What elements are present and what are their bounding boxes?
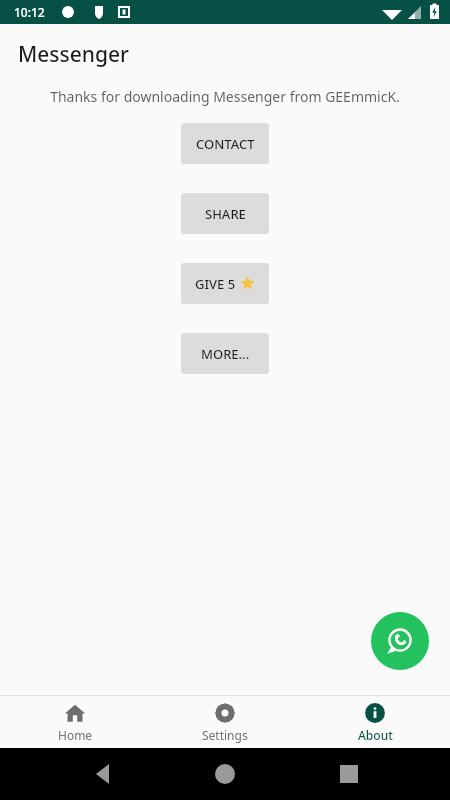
button[interactable]: SHARE [181,193,269,234]
button[interactable]: MORE... [181,333,269,374]
staticText: SHARE [205,205,246,223]
staticText: Settings [202,727,248,743]
staticText: GIVE 5 [195,275,236,293]
button[interactable]: About [300,696,450,748]
button[interactable]: Settings [150,696,300,748]
staticText: Thanks for downloading Messenger from GE… [20,87,430,106]
staticText: Messenger [18,40,129,69]
staticText: CONTACT [196,135,255,153]
staticText: Home [58,727,93,743]
button[interactable]: Home [0,696,150,748]
button[interactable]: GIVE 5 [181,263,269,304]
staticText: MORE... [201,345,250,363]
staticText: About [358,727,393,743]
button[interactable]: CONTACT [181,123,269,164]
button[interactable]: Open WhatsApp [371,612,429,670]
staticText: 10:12 [14,4,45,20]
